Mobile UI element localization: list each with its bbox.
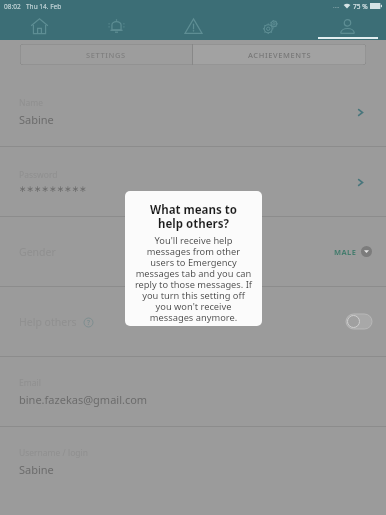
staticText: You'll receive help messages from other … <box>134 234 253 324</box>
button[interactable]: Alerts <box>155 12 232 40</box>
staticText: 75 % <box>353 2 368 11</box>
staticText: bine.fazekas@gmail.com <box>19 392 148 407</box>
other: Change gender <box>361 246 372 257</box>
button[interactable]: Edit Password <box>350 172 370 192</box>
button[interactable]: Gender <box>0 217 386 286</box>
button[interactable]: Profile <box>309 12 386 40</box>
staticText: Thu 14. Feb <box>26 2 62 11</box>
staticText: Email <box>19 377 41 389</box>
staticText: Sabine <box>19 112 54 127</box>
button[interactable]: Settings <box>232 12 309 40</box>
button[interactable]: SETTINGS <box>20 44 192 65</box>
staticText: Username / login <box>19 447 88 459</box>
staticText: 08:02 <box>4 2 21 11</box>
button[interactable]: Password <box>0 147 386 216</box>
staticText: .... <box>333 2 340 10</box>
button[interactable]: ACHIEVEMENTS <box>193 44 366 65</box>
staticText: ∗∗∗∗∗∗∗∗∗ <box>19 184 87 194</box>
staticText: Help others <box>19 315 77 329</box>
button[interactable]: Home <box>0 12 78 40</box>
staticText: SETTINGS <box>86 50 126 60</box>
staticText: What means to help others? <box>134 202 253 231</box>
button[interactable]: Notifications <box>78 12 155 40</box>
button[interactable]: Help others <box>0 287 386 356</box>
button[interactable]: Email <box>0 357 386 426</box>
button[interactable]: Edit Name <box>350 102 370 122</box>
staticText: ? <box>87 318 91 327</box>
staticText: ACHIEVEMENTS <box>248 50 312 60</box>
staticText: Name <box>19 97 43 109</box>
button[interactable]: MALE <box>334 246 372 257</box>
staticText: Gender <box>19 245 56 259</box>
staticText: MALE <box>334 247 357 257</box>
button[interactable]: What means to help others <box>83 317 94 328</box>
button[interactable]: Help others toggle <box>346 314 372 329</box>
staticText: Sabine <box>19 462 54 477</box>
staticText: Password <box>19 169 58 181</box>
